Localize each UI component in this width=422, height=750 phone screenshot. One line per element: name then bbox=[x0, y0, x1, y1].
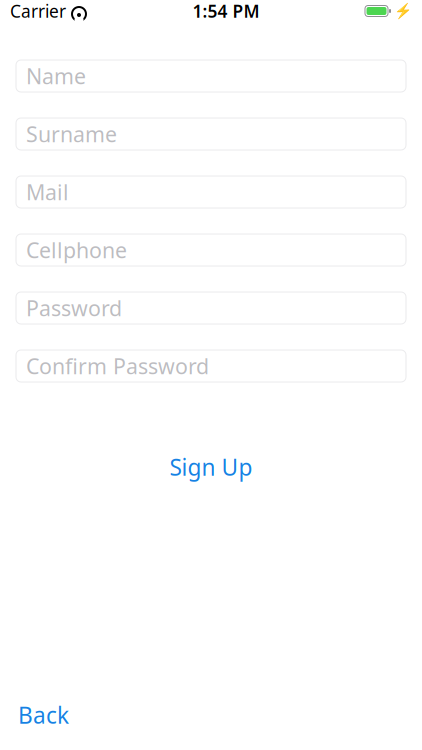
staticText: Mail bbox=[26, 178, 69, 206]
button[interactable]: Back bbox=[18, 704, 69, 726]
button[interactable]: Password bbox=[16, 292, 406, 324]
staticText: Sign Up bbox=[169, 452, 252, 482]
button[interactable]: Name bbox=[16, 60, 406, 92]
staticText: Name bbox=[26, 62, 86, 90]
staticText: ⚡ bbox=[394, 3, 412, 19]
button[interactable]: Sign Up bbox=[0, 456, 422, 478]
button[interactable]: Mail bbox=[16, 176, 406, 208]
staticText: Carrier bbox=[10, 0, 66, 22]
button[interactable]: Cellphone bbox=[16, 234, 406, 266]
staticText: Password bbox=[26, 294, 122, 322]
button[interactable]: Surname bbox=[16, 118, 406, 150]
staticText: Confirm Password bbox=[26, 352, 209, 380]
staticText: 1:54 PM bbox=[192, 0, 259, 22]
staticText: Surname bbox=[26, 120, 117, 148]
staticText: Cellphone bbox=[26, 236, 127, 264]
staticText: Back bbox=[18, 700, 69, 730]
button[interactable]: Confirm Password bbox=[16, 350, 406, 382]
